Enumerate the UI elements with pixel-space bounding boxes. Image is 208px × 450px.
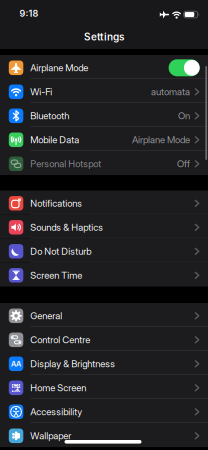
staticText: Display & Brightness xyxy=(30,358,115,370)
staticText: Do Not Disturb xyxy=(30,245,91,257)
staticText: Wallpaper xyxy=(30,430,71,442)
staticText: General xyxy=(30,310,62,322)
staticText: automata xyxy=(151,86,190,98)
staticText: 9:18 xyxy=(19,8,38,19)
button[interactable]: Wallpaper xyxy=(0,423,208,447)
staticText: Bluetooth xyxy=(30,110,69,122)
staticText: Off xyxy=(177,158,190,170)
staticText: Accessibility xyxy=(30,406,82,418)
staticText: AA xyxy=(11,359,21,368)
button[interactable]: Bluetooth xyxy=(0,103,208,127)
staticText: Sounds & Haptics xyxy=(30,221,103,233)
button[interactable]: General xyxy=(0,303,208,327)
staticText: Notifications xyxy=(30,197,82,209)
staticText: Screen Time xyxy=(30,269,82,281)
button[interactable]: Screen Time xyxy=(0,262,208,286)
button[interactable]: Airplane Mode xyxy=(169,59,200,76)
staticText: Wi-Fi xyxy=(30,86,52,98)
staticText: Airplane Mode xyxy=(30,62,88,74)
button[interactable]: Wi-Fi xyxy=(0,79,208,103)
button[interactable]: Notifications xyxy=(0,190,208,214)
button[interactable]: Sounds & Haptics xyxy=(0,214,208,238)
button[interactable]: Mobile Data xyxy=(0,127,208,151)
button[interactable]: Do Not Disturb xyxy=(0,238,208,262)
staticText: On xyxy=(178,110,190,122)
button[interactable]: AA xyxy=(0,351,208,375)
staticText: Control Centre xyxy=(30,334,90,346)
button[interactable]: Home Screen xyxy=(0,375,208,399)
staticText: Personal Hotspot xyxy=(30,158,101,170)
button[interactable]: Personal Hotspot xyxy=(0,151,208,175)
staticText: Mobile Data xyxy=(30,134,79,146)
button[interactable]: Accessibility xyxy=(0,399,208,423)
staticText: Home Screen xyxy=(30,382,86,394)
button[interactable]: Control Centre xyxy=(0,327,208,351)
staticText: Settings xyxy=(84,31,124,43)
staticText: Airplane Mode xyxy=(132,134,190,146)
